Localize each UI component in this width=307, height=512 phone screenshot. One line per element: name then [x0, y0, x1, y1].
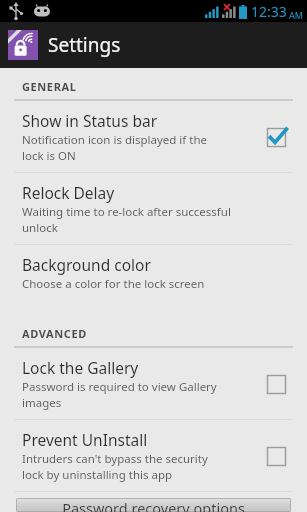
staticText: Waiting time to re-lock after successful… [22, 204, 231, 235]
staticText: Settings [48, 32, 121, 58]
staticText: Lock the Gallery [22, 357, 139, 378]
staticText: GENERAL [22, 79, 77, 94]
button[interactable]: Unchecked [259, 439, 293, 473]
staticText: Background color [22, 254, 151, 275]
button[interactable]: Background color [0, 245, 307, 301]
button[interactable]: Password recovery options [16, 498, 291, 512]
button[interactable]: Relock Delay [0, 173, 307, 244]
staticText: Choose a color for the lock screen [22, 276, 205, 292]
staticText: Notification icon is displayed if the lo… [22, 132, 207, 163]
button[interactable]: Unchecked [259, 367, 293, 401]
staticText: 12:33 [251, 2, 287, 21]
staticText: Intruders can't bypass the security lock… [22, 451, 208, 482]
button[interactable]: Lock the Gallery [0, 348, 307, 419]
button[interactable]: Show in Status bar [0, 101, 307, 172]
staticText: ADVANCED [22, 326, 87, 341]
staticText: AM [289, 9, 303, 21]
button[interactable]: Checked [259, 120, 293, 154]
staticText: Password recovery options [62, 498, 245, 512]
staticText: Relock Delay [22, 182, 115, 203]
button[interactable]: Prevent UnInstall [0, 420, 307, 491]
staticText: Password is required to view Gallery ima… [22, 379, 217, 410]
staticText: Show in Status bar [22, 110, 158, 131]
staticText: Prevent UnInstall [22, 429, 148, 450]
